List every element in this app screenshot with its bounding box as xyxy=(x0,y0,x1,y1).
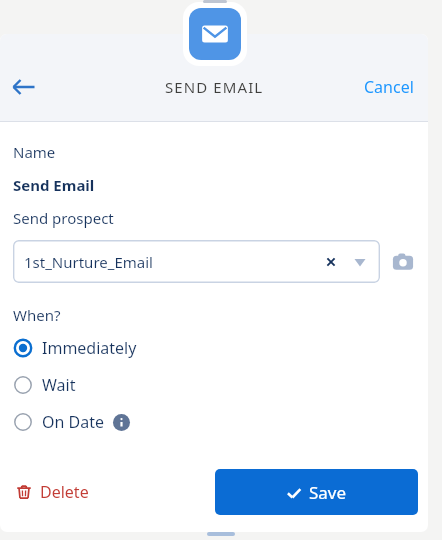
button[interactable]: Delete xyxy=(8,475,97,509)
staticText: When? xyxy=(13,305,61,325)
staticText: Wait xyxy=(42,374,76,396)
staticText: On Date xyxy=(42,411,105,433)
button[interactable]: Save xyxy=(215,469,418,515)
other: Open list xyxy=(349,251,371,273)
button[interactable]: On Date xyxy=(13,409,415,435)
staticText: Name xyxy=(13,142,56,162)
button[interactable]: Cancel xyxy=(354,68,424,106)
button[interactable]: Wait xyxy=(13,372,415,398)
staticText: Immediately xyxy=(42,337,137,359)
button[interactable]: Immediately xyxy=(13,335,415,361)
button[interactable]: Clear xyxy=(320,251,342,273)
button[interactable]: Back xyxy=(4,67,44,107)
staticText: 1st_Nurture_Email xyxy=(24,252,153,272)
staticText: Send Email xyxy=(13,175,95,195)
staticText: Send prospect xyxy=(13,208,114,228)
staticText: Delete xyxy=(40,481,89,503)
button[interactable]: 1st_Nurture_Email xyxy=(13,240,380,283)
staticText: Cancel xyxy=(364,76,414,98)
staticText: Save xyxy=(309,481,347,504)
button[interactable]: Take photo xyxy=(391,249,415,275)
staticText: SEND EMAIL xyxy=(165,77,264,97)
button[interactable]: Send email action xyxy=(183,2,247,66)
other: More information xyxy=(113,414,130,431)
